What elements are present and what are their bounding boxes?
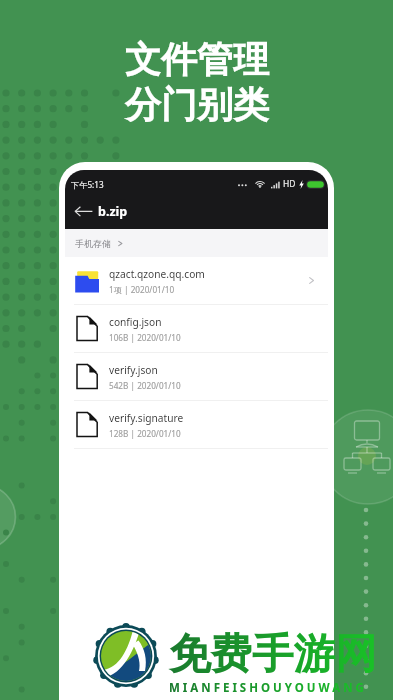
staticText: 128B | 2020/01/10 bbox=[109, 428, 181, 439]
staticText: qzact.qzone.qq.com bbox=[109, 267, 205, 281]
staticText: verify.json bbox=[109, 363, 158, 377]
button[interactable]: verify.json bbox=[65, 353, 328, 400]
staticText: HD bbox=[283, 178, 296, 190]
staticText: 手机存储 bbox=[75, 238, 111, 249]
staticText: 免费手游网 bbox=[169, 628, 377, 680]
staticText: 542B | 2020/01/10 bbox=[109, 380, 181, 391]
staticText: verify.signature bbox=[109, 411, 184, 425]
staticText: b.zip bbox=[98, 203, 128, 220]
button[interactable]: verify.signature bbox=[65, 401, 328, 448]
staticText: config.json bbox=[109, 315, 162, 329]
staticText: MIANFEISHOUYOUWANG bbox=[169, 680, 367, 696]
button[interactable]: 手机存储 bbox=[65, 229, 328, 257]
staticText: 下午5:13 bbox=[71, 179, 104, 190]
button[interactable]: config.json bbox=[65, 305, 328, 352]
staticText: 分门别类 bbox=[125, 82, 269, 127]
button[interactable]: qzact.qzone.qq.com bbox=[65, 257, 328, 304]
staticText: 文件管理 bbox=[125, 37, 269, 82]
button[interactable]: Back bbox=[74, 201, 94, 221]
staticText: 106B | 2020/01/10 bbox=[109, 332, 181, 343]
staticText: 1项 | 2020/01/10 bbox=[109, 284, 175, 295]
